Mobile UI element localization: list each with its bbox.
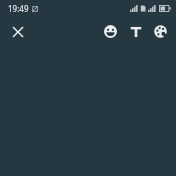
staticText: 19:49 (8, 3, 29, 14)
button[interactable]: Stickers (98, 19, 123, 44)
button[interactable]: Draw (148, 19, 173, 44)
button[interactable]: Close (5, 19, 31, 45)
button[interactable]: Add text (123, 19, 148, 44)
